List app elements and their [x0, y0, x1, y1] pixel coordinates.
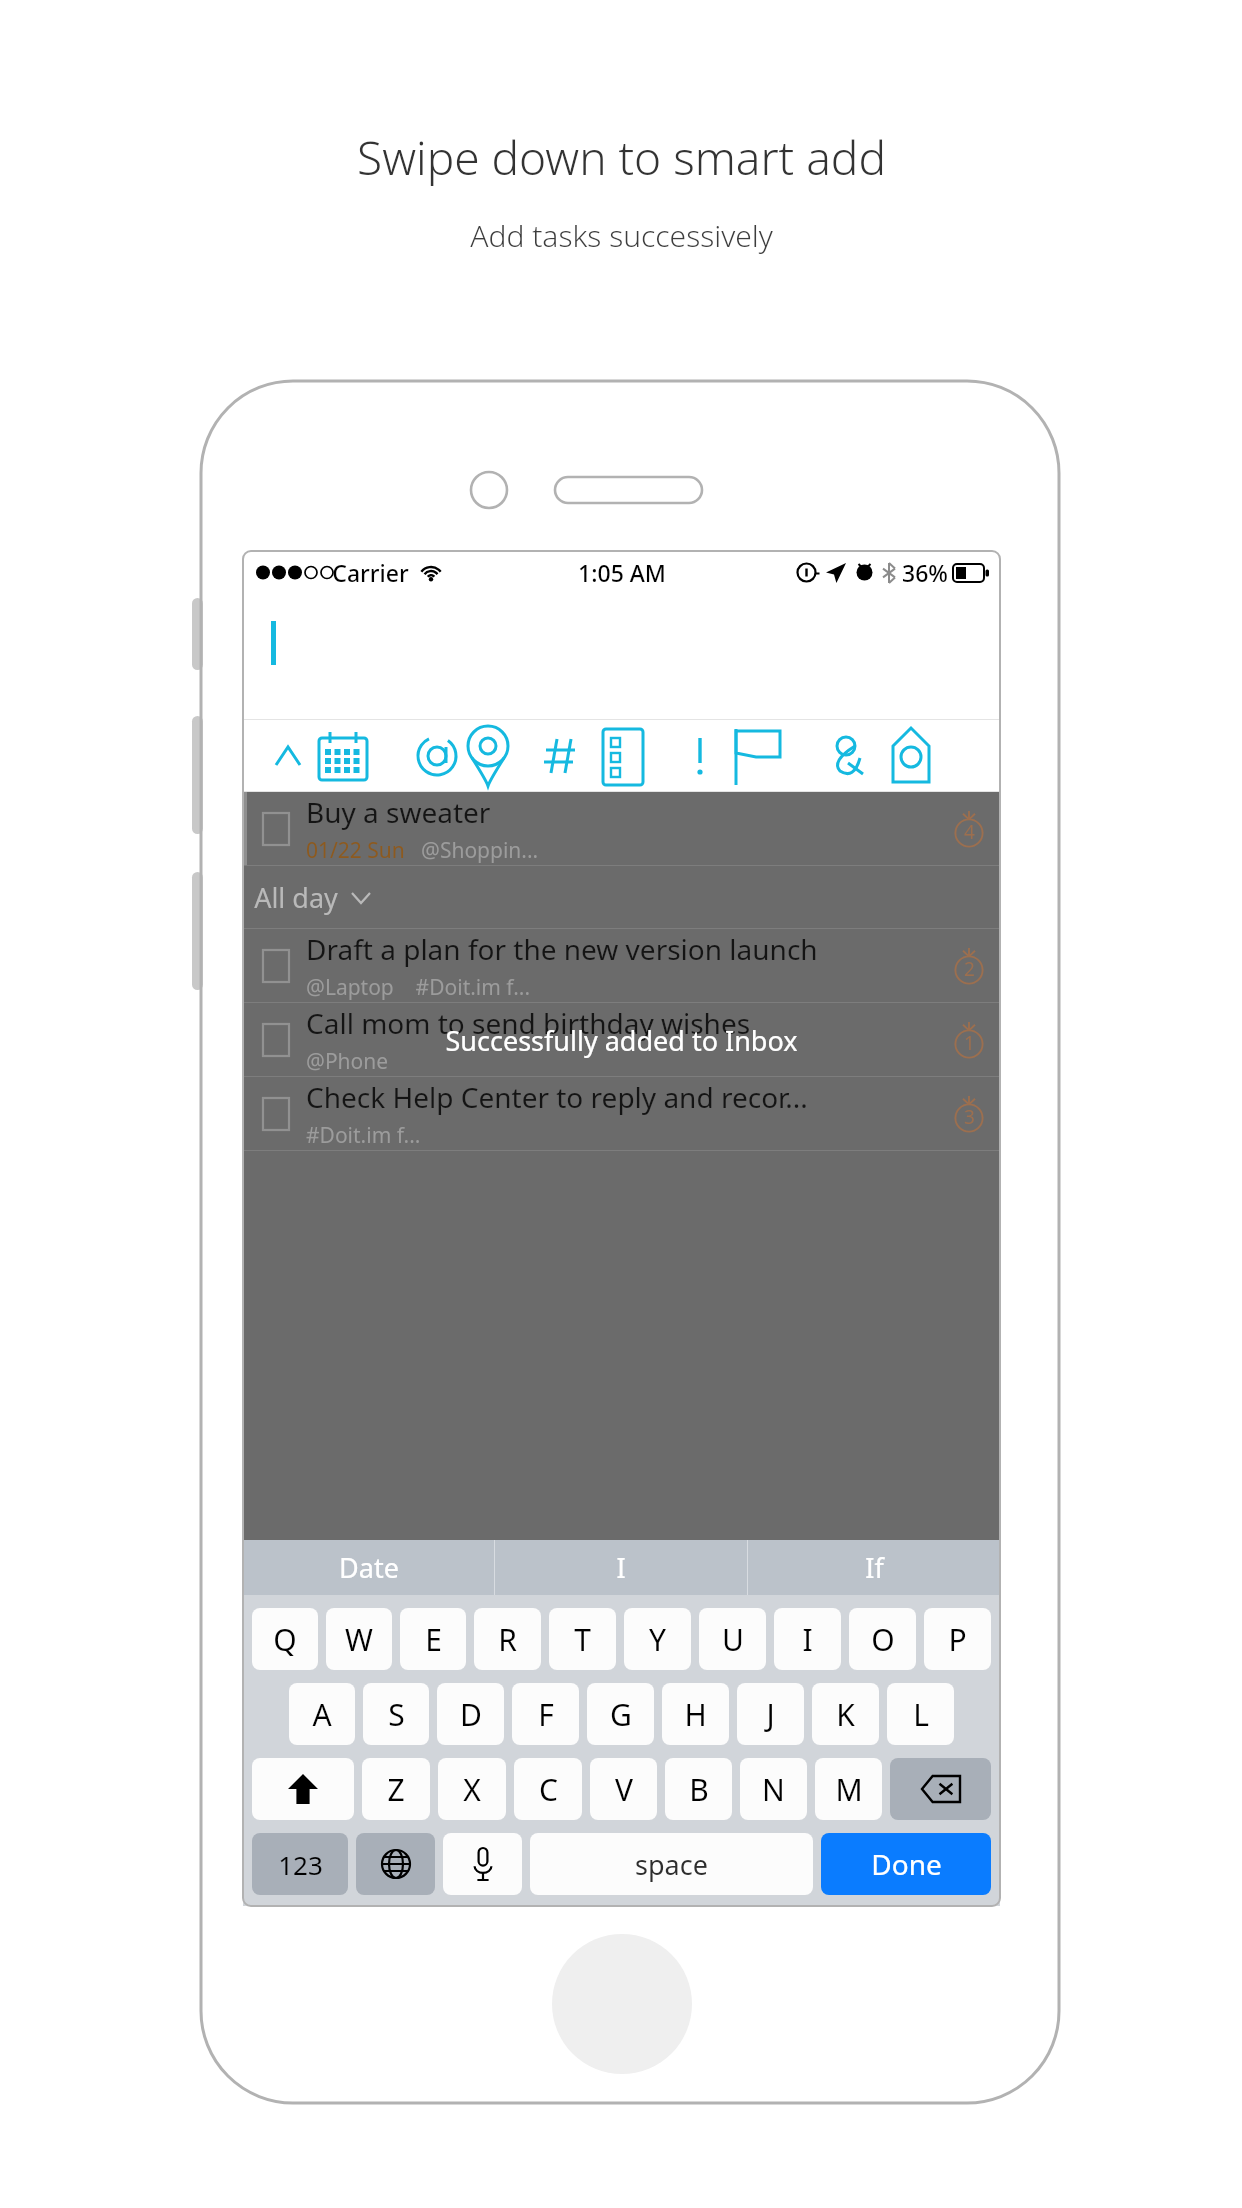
staticText: 3: [964, 1104, 975, 1130]
button[interactable]: Date: [318, 720, 393, 792]
button[interactable]: Project: [620, 720, 696, 792]
button[interactable]: Context: [393, 720, 468, 792]
button[interactable]: J: [737, 1683, 804, 1745]
staticText: D: [460, 1694, 482, 1735]
staticText: E: [425, 1619, 442, 1660]
button[interactable]: M: [815, 1758, 882, 1820]
staticText: L: [913, 1694, 929, 1735]
button[interactable]: Tag: [544, 720, 620, 792]
staticText: @Phone: [306, 1047, 389, 1076]
button[interactable]: X: [438, 1758, 506, 1820]
staticText: K: [836, 1694, 855, 1735]
staticText: Buy a sweater: [306, 793, 491, 831]
button[interactable]: Complete task: [263, 813, 289, 845]
button[interactable]: V: [590, 1758, 657, 1820]
button[interactable]: All day: [243, 866, 1000, 928]
button[interactable]: If: [748, 1540, 1000, 1595]
staticText: V: [615, 1769, 633, 1810]
button[interactable]: Complete task: [243, 1003, 1000, 1076]
staticText: All day: [254, 879, 338, 916]
button[interactable]: Flag: [772, 720, 848, 792]
button[interactable]: Complete task: [263, 1024, 289, 1056]
staticText: Call mom to send birthday wishes: [306, 1004, 751, 1042]
button[interactable]: A: [289, 1683, 355, 1745]
button[interactable]: Complete task: [263, 950, 289, 982]
button[interactable]: I: [774, 1608, 841, 1670]
staticText: Date: [339, 1549, 399, 1586]
staticText: Done: [871, 1845, 942, 1883]
button[interactable]: Location: [468, 720, 544, 792]
button[interactable]: U: [699, 1608, 766, 1670]
button[interactable]: O: [849, 1608, 916, 1670]
button[interactable]: [243, 594, 1000, 720]
button[interactable]: Complete task: [243, 929, 1000, 1002]
button[interactable]: B: [665, 1758, 732, 1820]
button[interactable]: N: [740, 1758, 807, 1820]
button[interactable]: F: [512, 1683, 579, 1745]
staticText: Swipe down to smart add: [357, 126, 886, 189]
staticText: G: [610, 1694, 632, 1735]
button[interactable]: H: [662, 1683, 729, 1745]
button[interactable]: Y: [624, 1608, 691, 1670]
button[interactable]: G: [587, 1683, 654, 1745]
button[interactable]: Switch keyboard: [356, 1833, 435, 1895]
button[interactable]: Done: [821, 1833, 991, 1895]
button[interactable]: Q: [252, 1608, 318, 1670]
staticText: space: [635, 1846, 708, 1883]
staticText: A: [312, 1694, 332, 1735]
staticText: N: [762, 1769, 785, 1810]
button[interactable]: W: [326, 1608, 392, 1670]
staticText: 01/22 Sun: [306, 836, 405, 865]
button[interactable]: Complete task: [263, 1098, 289, 1130]
button[interactable]: I: [495, 1540, 747, 1595]
button[interactable]: S: [363, 1683, 429, 1745]
staticText: Y: [649, 1619, 666, 1660]
button[interactable]: Dictation: [443, 1833, 522, 1895]
staticText: U: [722, 1619, 744, 1660]
button[interactable]: Shift: [252, 1758, 354, 1820]
staticText: J: [766, 1694, 775, 1735]
button[interactable]: Complete task: [243, 1077, 1000, 1150]
staticText: #Doit.im f...: [306, 1121, 421, 1150]
staticText: 4: [964, 819, 975, 845]
button[interactable]: C: [514, 1758, 582, 1820]
staticText: If: [865, 1549, 884, 1586]
staticText: S: [388, 1694, 405, 1735]
button[interactable]: L: [887, 1683, 954, 1745]
button[interactable]: T: [549, 1608, 616, 1670]
button[interactable]: Collapse: [243, 720, 318, 792]
staticText: @Shoppin...: [421, 836, 539, 865]
staticText: F: [538, 1694, 554, 1735]
staticText: X: [463, 1769, 481, 1810]
button[interactable]: R: [474, 1608, 541, 1670]
staticText: C: [539, 1769, 558, 1810]
button[interactable]: And: [848, 720, 924, 792]
staticText: M: [835, 1769, 863, 1810]
button[interactable]: space: [530, 1833, 813, 1895]
staticText: B: [689, 1769, 709, 1810]
button[interactable]: 123: [252, 1833, 348, 1895]
staticText: 1: [964, 1030, 975, 1056]
staticText: Carrier: [332, 557, 409, 588]
button[interactable]: Date: [243, 1540, 494, 1595]
staticText: 123: [278, 1847, 323, 1882]
staticText: Add tasks successively: [470, 215, 773, 256]
button[interactable]: K: [812, 1683, 879, 1745]
staticText: Successfully added to Inbox: [445, 1022, 798, 1059]
button[interactable]: Priority: [696, 720, 772, 792]
button[interactable]: Label: [924, 720, 1000, 792]
button[interactable]: Backspace: [890, 1758, 991, 1820]
button[interactable]: Complete task: [243, 792, 1000, 865]
staticText: I: [802, 1619, 813, 1660]
staticText: O: [871, 1619, 895, 1660]
staticText: 2: [964, 956, 975, 982]
button[interactable]: Z: [362, 1758, 430, 1820]
staticText: 1:05 AM: [578, 557, 666, 588]
staticText: Q: [273, 1619, 297, 1660]
button[interactable]: P: [924, 1608, 991, 1670]
staticText: P: [948, 1619, 967, 1660]
button[interactable]: E: [400, 1608, 466, 1670]
staticText: W: [345, 1619, 373, 1660]
button[interactable]: D: [437, 1683, 504, 1745]
staticText: Z: [387, 1769, 405, 1810]
